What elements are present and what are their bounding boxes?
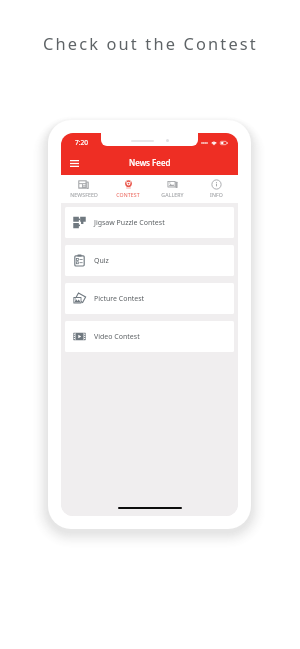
staticText: Quiz — [94, 256, 109, 266]
staticText: GALLERY — [161, 191, 184, 198]
button[interactable]: NEWSFEED — [61, 175, 106, 198]
staticText: Jigsaw Puzzle Contest — [94, 218, 165, 228]
button[interactable]: INFO — [194, 175, 238, 198]
button[interactable]: Quiz — [65, 245, 234, 276]
button[interactable]: Open navigation menu — [65, 154, 83, 172]
staticText: Video Contest — [94, 332, 140, 342]
button[interactable]: CONTEST — [106, 175, 150, 198]
button[interactable]: Video Contest — [65, 321, 234, 352]
staticText: Check out the Contest — [43, 32, 258, 54]
button[interactable]: GALLERY — [150, 175, 194, 198]
staticText: Picture Contest — [94, 294, 145, 304]
button[interactable]: Jigsaw Puzzle Contest — [65, 207, 234, 238]
staticText: 7:20 — [75, 138, 88, 147]
staticText: INFO — [210, 191, 223, 198]
staticText: News Feed — [129, 157, 171, 168]
staticText: NEWSFEED — [70, 191, 98, 198]
staticText: CONTEST — [116, 191, 140, 198]
button[interactable]: Picture Contest — [65, 283, 234, 314]
